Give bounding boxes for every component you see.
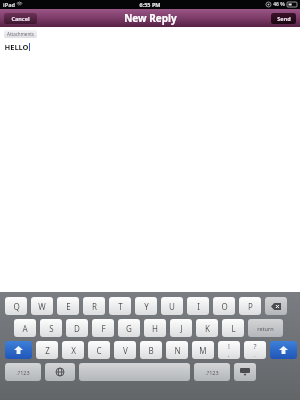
button[interactable]: S	[40, 319, 62, 337]
staticText: L	[231, 323, 236, 334]
button[interactable]: Cancel	[4, 13, 37, 24]
staticText: H	[152, 323, 158, 334]
staticText: .?123	[205, 369, 219, 376]
staticText: R	[92, 301, 97, 312]
button[interactable]: Hide keyboard	[234, 363, 256, 381]
staticText: J	[180, 323, 183, 334]
button[interactable]: K	[196, 319, 218, 337]
staticText: 6:55 PM	[139, 1, 161, 8]
button[interactable]: .?123	[194, 363, 230, 381]
staticText: .?123	[16, 369, 30, 376]
button[interactable]: Backspace	[265, 297, 287, 315]
staticText: HELLO	[4, 42, 29, 52]
staticText: iPad	[3, 1, 15, 8]
staticText: .	[254, 352, 256, 359]
button[interactable]: Attachments	[4, 30, 37, 38]
staticText: 46 %	[273, 1, 285, 8]
staticText: !	[228, 342, 230, 352]
staticText: O	[221, 301, 228, 312]
button[interactable]: B	[140, 341, 162, 359]
button[interactable]: ?	[244, 341, 266, 359]
button[interactable]: P	[239, 297, 261, 315]
staticText: N	[174, 345, 181, 356]
staticText: Z	[45, 345, 50, 356]
staticText: Attachments	[7, 31, 34, 37]
button[interactable]: C	[88, 341, 110, 359]
button[interactable]: G	[118, 319, 140, 337]
staticText: S	[49, 323, 54, 334]
button[interactable]: N	[166, 341, 188, 359]
staticText: G	[126, 323, 132, 334]
staticText: X	[71, 345, 76, 356]
button[interactable]: Shift	[270, 341, 297, 359]
button[interactable]: V	[114, 341, 136, 359]
staticText: U	[169, 301, 175, 312]
button[interactable]: T	[109, 297, 131, 315]
button[interactable]: X	[62, 341, 84, 359]
button[interactable]: F	[92, 319, 114, 337]
button[interactable]: Send	[271, 13, 296, 24]
staticText: K	[205, 323, 210, 334]
staticText: B	[148, 345, 154, 356]
button[interactable]: M	[192, 341, 214, 359]
button[interactable]: U	[161, 297, 183, 315]
staticText: return	[257, 325, 274, 332]
staticText: ,	[228, 352, 230, 359]
staticText: Q	[13, 301, 20, 312]
button[interactable]: Z	[36, 341, 58, 359]
button[interactable]: W	[31, 297, 53, 315]
staticText: Cancel	[11, 15, 30, 22]
staticText: V	[123, 345, 128, 356]
staticText: I	[197, 301, 200, 312]
staticText: New Reply	[124, 11, 177, 25]
staticText: Send	[277, 15, 291, 22]
button[interactable]: L	[222, 319, 244, 337]
button[interactable]: D	[66, 319, 88, 337]
button[interactable]: I	[187, 297, 209, 315]
button[interactable]: return	[248, 319, 283, 337]
button[interactable]: A	[14, 319, 36, 337]
button[interactable]: O	[213, 297, 235, 315]
button[interactable]: Shift	[5, 341, 32, 359]
staticText: ?	[253, 342, 257, 352]
staticText: F	[101, 323, 106, 334]
button[interactable]: E	[57, 297, 79, 315]
staticText: T	[118, 301, 123, 312]
button[interactable]: Y	[135, 297, 157, 315]
staticText: P	[248, 301, 253, 312]
button[interactable]: J	[170, 319, 192, 337]
staticText: M	[199, 345, 207, 356]
button[interactable]: .?123	[5, 363, 41, 381]
staticText: C	[96, 345, 102, 356]
staticText: D	[74, 323, 80, 334]
staticText: E	[66, 301, 71, 312]
button[interactable]: Space	[79, 363, 190, 381]
button[interactable]: H	[144, 319, 166, 337]
staticText: Y	[144, 301, 149, 312]
button[interactable]: R	[83, 297, 105, 315]
button[interactable]: !	[218, 341, 240, 359]
button[interactable]: Q	[5, 297, 27, 315]
button[interactable]: Switch keyboard	[45, 363, 75, 381]
staticText: W	[38, 301, 46, 312]
staticText: A	[22, 323, 28, 334]
